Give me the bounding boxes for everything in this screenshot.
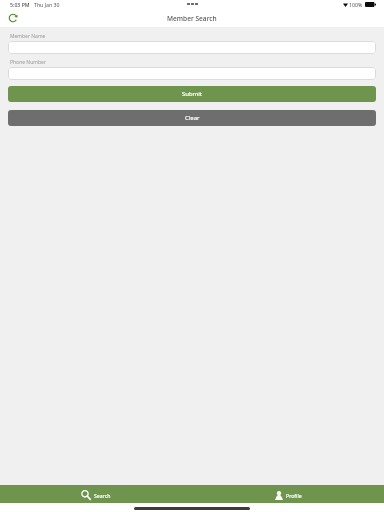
staticText: Clear	[185, 114, 200, 122]
staticText: Member Name	[10, 33, 46, 40]
button[interactable]: Search	[0, 485, 192, 503]
button[interactable]: Clear	[8, 110, 376, 126]
button[interactable]	[8, 41, 376, 54]
button[interactable]: Profile	[192, 485, 384, 503]
staticText: Thu Jan 30	[34, 1, 60, 8]
button[interactable]: Submit	[8, 86, 376, 102]
staticText: Phone Number	[10, 59, 46, 66]
button[interactable]	[8, 67, 376, 80]
staticText: Profile	[286, 492, 302, 499]
staticText: 5:03 PM	[10, 1, 30, 8]
staticText: Submit	[182, 90, 203, 98]
staticText: 100%	[349, 1, 363, 8]
staticText: Search	[94, 492, 111, 499]
staticText: Member Search	[167, 14, 217, 23]
button[interactable]: Refresh	[5, 10, 21, 26]
